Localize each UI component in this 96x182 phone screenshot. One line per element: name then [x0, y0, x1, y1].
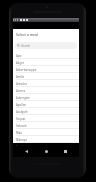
button[interactable]: Recent apps — [60, 146, 71, 157]
staticText: Sandu — [16, 145, 25, 149]
button[interactable]: Sabrash — [13, 122, 79, 129]
staticText: Aligot — [16, 61, 24, 65]
staticText: Soquat — [16, 117, 26, 121]
button[interactable]: Anello — [13, 73, 79, 80]
button[interactable]: Aurora — [13, 87, 79, 94]
staticText: Nikonya — [16, 138, 27, 142]
button[interactable]: Search — [15, 42, 77, 49]
staticText: Select a meal — [16, 32, 39, 37]
button[interactable]: Ankerbarsuppe — [13, 66, 79, 73]
button[interactable]: Antocha — [13, 80, 79, 87]
button[interactable]: Home — [41, 146, 52, 157]
button[interactable]: Nikonya — [13, 136, 79, 143]
staticText: Search — [21, 44, 31, 48]
button[interactable]: Azulgoth — [13, 108, 79, 115]
staticText: Aurora — [16, 89, 25, 93]
staticText: Sabrash — [16, 124, 27, 128]
staticText: Nika — [16, 131, 22, 135]
staticText: Apollon — [16, 103, 27, 107]
staticText: Antocha — [16, 82, 27, 86]
staticText: Ankerbarsuppe — [16, 68, 37, 72]
button[interactable]: Aubergine — [13, 94, 79, 101]
staticText: Anello — [16, 75, 25, 79]
button[interactable]: Back — [21, 146, 32, 157]
button[interactable]: Ajax — [13, 52, 79, 59]
button[interactable]: Nika — [13, 129, 79, 136]
button[interactable]: Soquat — [13, 115, 79, 122]
staticText: Ajax — [16, 54, 22, 58]
staticText: Aubergine — [16, 96, 30, 100]
button[interactable]: Aligot — [13, 59, 79, 66]
button[interactable]: Apollon — [13, 101, 79, 108]
staticText: Azulgoth — [16, 110, 28, 114]
